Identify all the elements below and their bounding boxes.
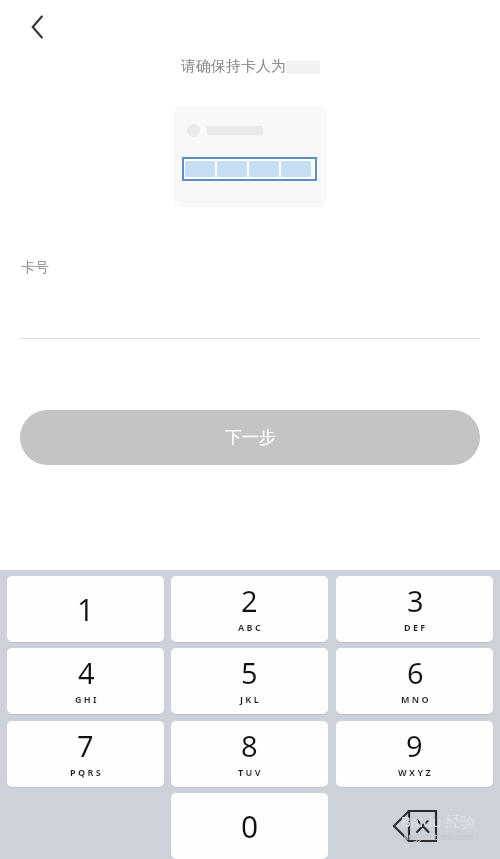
staticText: 2 xyxy=(241,581,258,620)
button[interactable]: 1 xyxy=(7,576,164,642)
button[interactable]: 7 xyxy=(7,721,164,787)
button[interactable]: 0 xyxy=(171,793,328,859)
button[interactable]: Back xyxy=(14,6,62,54)
button[interactable]: 3 xyxy=(336,576,493,642)
staticText: M N O xyxy=(401,693,429,705)
staticText: jingyan.baidu.com xyxy=(404,831,474,842)
staticText: W X Y Z xyxy=(398,766,431,778)
staticText: 8 xyxy=(241,726,258,765)
staticText: 6 xyxy=(407,653,424,692)
staticText: 请确保持卡人为 xyxy=(181,57,286,76)
staticText: D E F xyxy=(404,621,426,633)
button[interactable]: Backspace xyxy=(336,793,493,859)
staticText: 9 xyxy=(406,726,423,765)
staticText: 1 xyxy=(77,589,95,630)
staticText: 5 xyxy=(241,653,258,692)
button[interactable]: 9 xyxy=(336,721,493,787)
button[interactable]: 5 xyxy=(171,648,328,714)
staticText: 4 xyxy=(78,653,95,692)
staticText: A B C xyxy=(238,621,261,633)
staticText: J K L xyxy=(240,693,259,705)
staticText: 7 xyxy=(77,726,94,765)
staticText: 0 xyxy=(241,806,259,847)
button[interactable]: 下一步 xyxy=(20,410,480,465)
staticText: Baidu 经验 xyxy=(401,811,476,831)
button[interactable]: 2 xyxy=(171,576,328,642)
staticText: 下一步 xyxy=(225,427,276,448)
button[interactable]: 6 xyxy=(336,648,493,714)
button[interactable]: 8 xyxy=(171,721,328,787)
staticText: T U V xyxy=(238,766,261,778)
button[interactable]: 4 xyxy=(7,648,164,714)
staticText: P Q R S xyxy=(70,766,101,778)
staticText: 3 xyxy=(407,581,424,620)
staticText: G H I xyxy=(75,693,97,705)
staticText: 卡号 xyxy=(21,259,49,277)
